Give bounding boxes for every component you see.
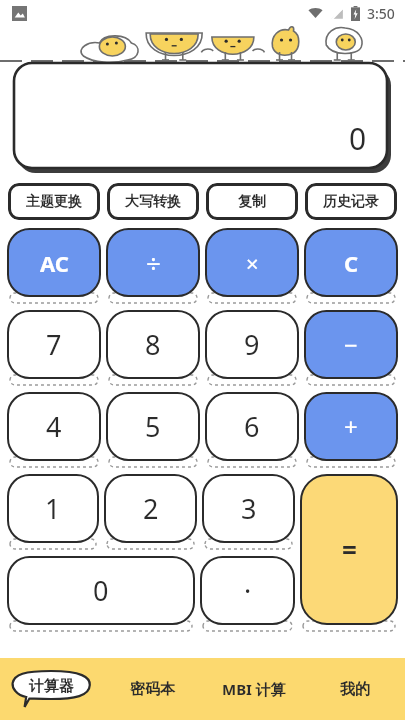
button[interactable]: · bbox=[201, 557, 294, 624]
staticText: 6 bbox=[244, 408, 260, 445]
button[interactable]: − bbox=[305, 311, 397, 378]
button[interactable]: C bbox=[305, 229, 397, 296]
button[interactable]: 大写转换 bbox=[107, 183, 199, 220]
staticText: = bbox=[342, 532, 357, 567]
staticText: × bbox=[246, 248, 259, 278]
staticText: − bbox=[344, 328, 358, 361]
staticText: 2 bbox=[143, 490, 159, 527]
button[interactable]: = bbox=[301, 475, 397, 624]
staticText: AC bbox=[40, 248, 69, 278]
button[interactable]: 3 bbox=[203, 475, 294, 542]
staticText: MBI 计算 bbox=[222, 679, 286, 699]
button[interactable]: MBI 计算 bbox=[203, 658, 304, 720]
staticText: ÷ bbox=[146, 245, 161, 280]
button[interactable]: × bbox=[206, 229, 298, 296]
button[interactable]: 历史记录 bbox=[305, 183, 397, 220]
staticText: 1 bbox=[45, 490, 61, 527]
button[interactable]: 密码本 bbox=[102, 658, 203, 720]
staticText: C bbox=[344, 248, 359, 278]
button[interactable]: AC bbox=[8, 229, 100, 296]
button[interactable]: 7 bbox=[8, 311, 100, 378]
button[interactable]: 4 bbox=[8, 393, 100, 460]
staticText: 计算器 bbox=[29, 677, 74, 696]
staticText: 我的 bbox=[340, 680, 370, 699]
button[interactable]: 主题更换 bbox=[8, 183, 100, 220]
button[interactable]: 我的 bbox=[304, 658, 405, 720]
staticText: + bbox=[344, 410, 358, 443]
staticText: 4 bbox=[46, 408, 62, 445]
button[interactable]: 复制 bbox=[206, 183, 298, 220]
staticText: 历史记录 bbox=[323, 193, 379, 211]
staticText: 3 bbox=[241, 490, 257, 527]
button[interactable]: + bbox=[305, 393, 397, 460]
staticText: 9 bbox=[244, 326, 260, 363]
button[interactable]: 2 bbox=[105, 475, 196, 542]
staticText: 7 bbox=[46, 326, 62, 363]
button[interactable]: 0 bbox=[8, 557, 194, 624]
button[interactable]: ÷ bbox=[107, 229, 199, 296]
staticText: 密码本 bbox=[130, 680, 175, 699]
button[interactable]: 5 bbox=[107, 393, 199, 460]
button[interactable]: 8 bbox=[107, 311, 199, 378]
staticText: 3:50 bbox=[367, 4, 395, 23]
staticText: · bbox=[244, 572, 252, 609]
staticText: 0 bbox=[349, 118, 367, 159]
staticText: 5 bbox=[145, 408, 161, 445]
button[interactable]: 1 bbox=[8, 475, 98, 542]
staticText: 0 bbox=[93, 572, 109, 609]
staticText: 复制 bbox=[238, 193, 266, 211]
staticText: 主题更换 bbox=[26, 193, 82, 211]
button[interactable]: 6 bbox=[206, 393, 298, 460]
button[interactable]: 9 bbox=[206, 311, 298, 378]
staticText: 8 bbox=[145, 326, 161, 363]
button[interactable]: 计算器 bbox=[0, 658, 102, 720]
staticText: 大写转换 bbox=[125, 193, 181, 211]
